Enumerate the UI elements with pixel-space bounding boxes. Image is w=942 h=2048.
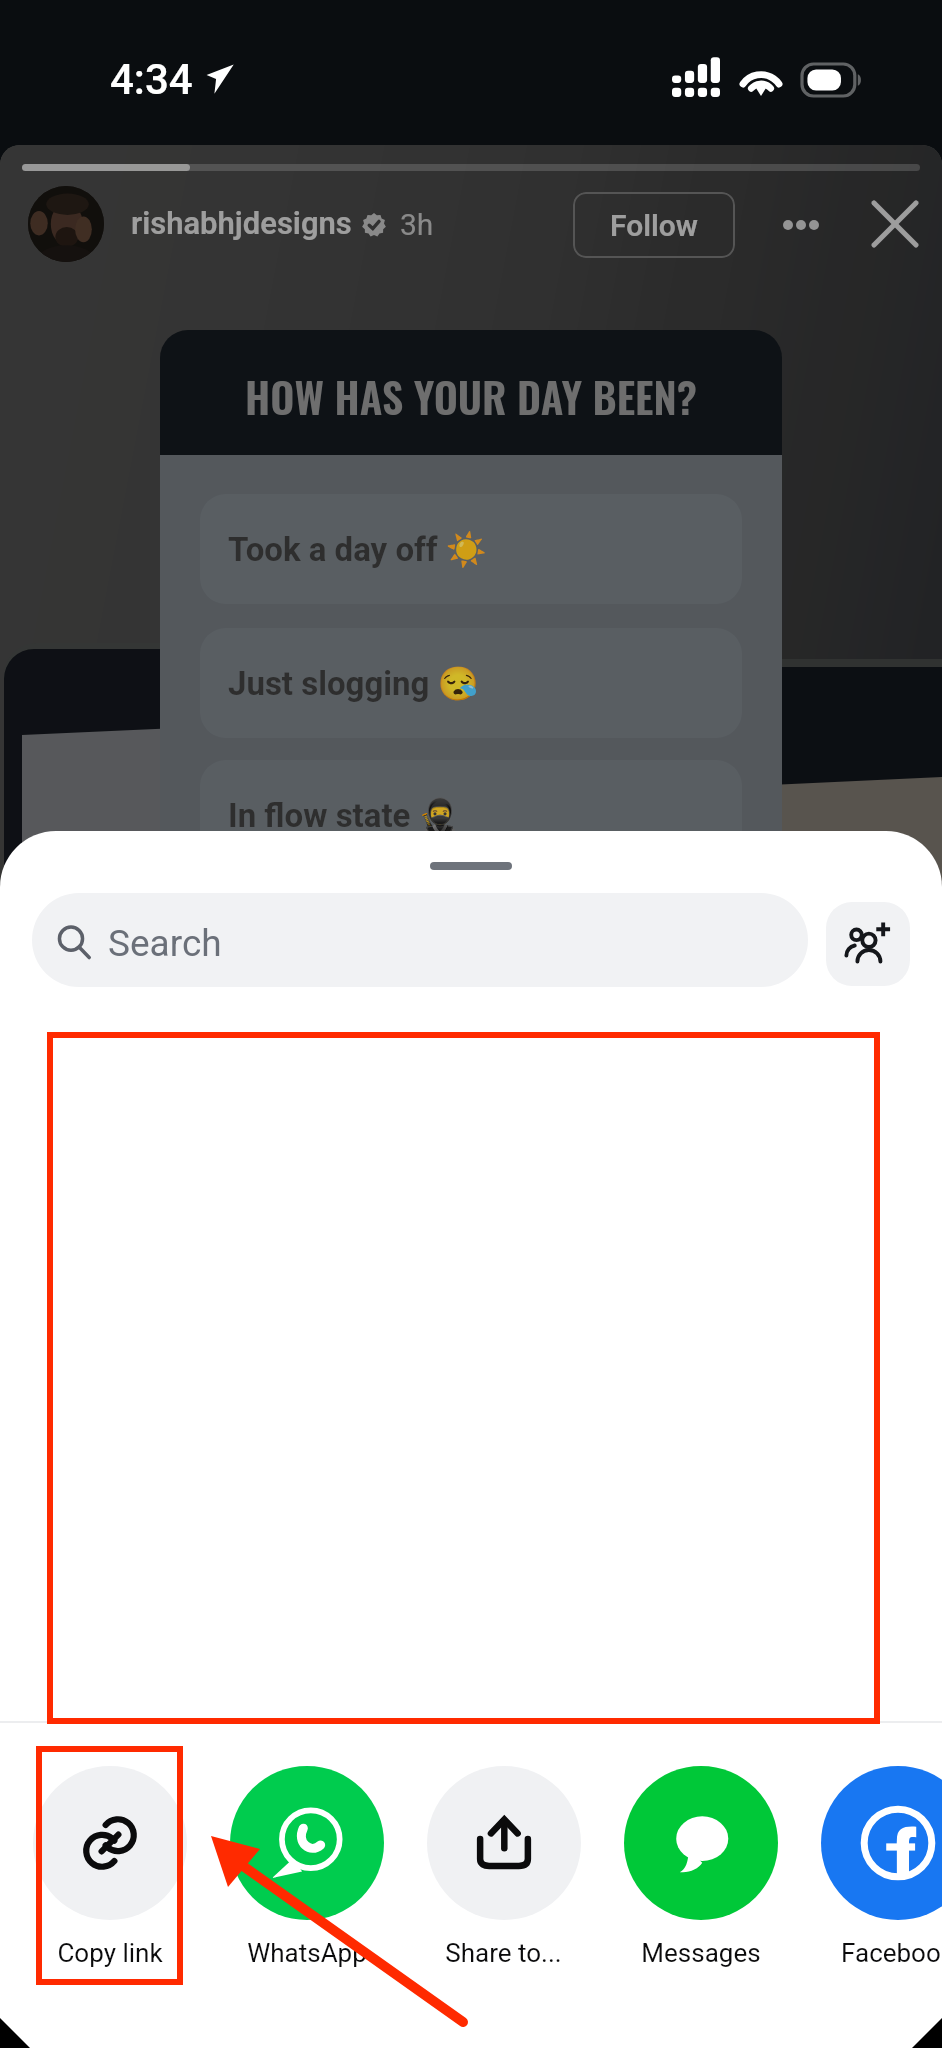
button[interactable]: Close [869,198,921,250]
button[interactable]: Search [32,893,808,987]
button[interactable]: WhatsApp [208,1766,405,1968]
staticText: Took a day off ☀️ [228,530,487,569]
button[interactable]: Messages [602,1766,799,1968]
staticText: rishabhjdesigns [131,205,352,241]
staticText: HOW HAS YOUR DAY BEEN? [245,365,697,427]
staticText: Search [108,922,222,965]
staticText: In flow state 🥷 [228,796,460,835]
staticText: 3h [400,207,434,242]
button[interactable]: Profile photo [28,186,104,262]
button[interactable]: Facebook [799,1766,942,1968]
button[interactable]: Follow [573,192,735,258]
button[interactable]: Share to... [405,1766,602,1968]
staticText: Share to... [445,1938,562,1968]
staticText: WhatsApp [247,1938,367,1968]
staticText: Messages [641,1938,761,1968]
staticText: Copy link [57,1938,163,1968]
staticText: 4:34 [110,55,193,104]
staticText: Follow [610,208,698,243]
button[interactable]: More options [782,208,820,242]
button[interactable]: Add people [826,902,910,986]
button[interactable]: Copy link [11,1766,208,1968]
staticText: Facebook [841,1938,942,1968]
staticText: Just slogging 😪 [228,664,479,703]
